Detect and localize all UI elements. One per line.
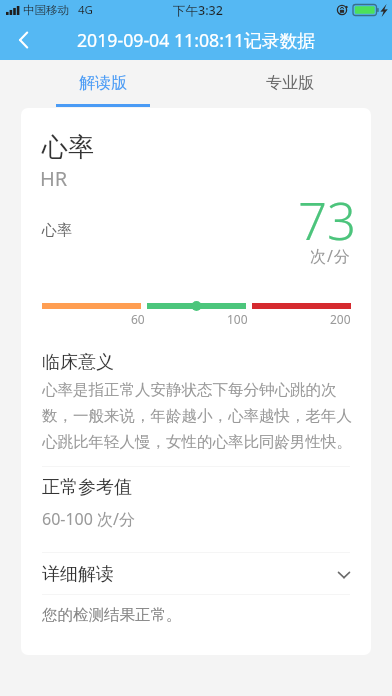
- staticText: HR: [40, 165, 68, 192]
- staticText: 心率: [42, 131, 94, 164]
- staticText: 中国移动: [23, 3, 69, 17]
- button[interactable]: 详细解读: [42, 553, 350, 596]
- staticText: 专业版: [266, 73, 314, 93]
- staticText: 73: [298, 185, 357, 254]
- staticText: 详细解读: [42, 563, 114, 586]
- staticText: 4G: [78, 2, 93, 18]
- button[interactable]: 专业版: [243, 60, 337, 108]
- staticText: 解读版: [79, 73, 127, 93]
- staticText: 200: [330, 311, 351, 327]
- staticText: 正常参考值: [42, 476, 132, 499]
- staticText: 您的检测结果正常。: [42, 605, 182, 625]
- staticText: 60: [131, 311, 145, 327]
- staticText: 次/分: [310, 245, 351, 267]
- staticText: 心率: [42, 221, 72, 240]
- staticText: 心率是指正常人安静状态下每分钟心跳的次 数，一般来说，年龄越小，心率越快，老年人…: [42, 380, 352, 452]
- button[interactable]: 解读版: [56, 60, 150, 108]
- button[interactable]: Back: [0, 20, 44, 60]
- staticText: 临床意义: [42, 351, 114, 374]
- staticText: 下午3:32: [173, 2, 223, 19]
- staticText: 2019-09-04 11:08:11记录数据: [77, 28, 315, 52]
- staticText: 60-100 次/分: [42, 508, 136, 530]
- staticText: 100: [227, 311, 248, 327]
